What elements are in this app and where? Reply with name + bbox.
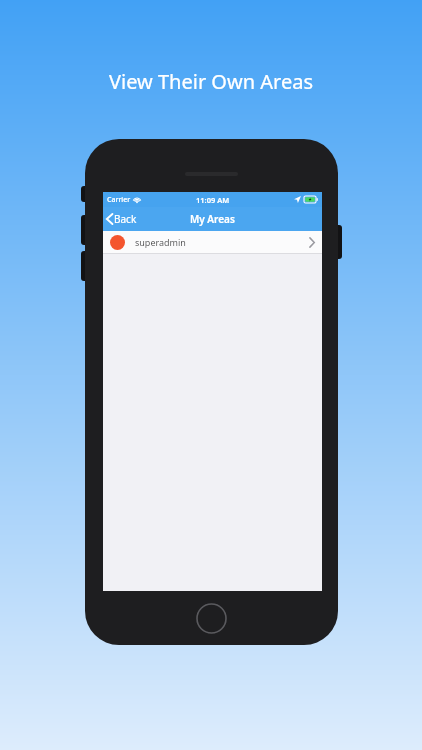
staticText: Back <box>114 212 137 226</box>
staticText: Carrier <box>107 195 131 205</box>
button[interactable]: superadmin <box>103 231 322 253</box>
button[interactable]: Back <box>103 207 143 231</box>
staticText: View Their Own Areas <box>109 68 313 95</box>
button[interactable]: Home <box>196 603 227 634</box>
staticText: superadmin <box>135 236 186 248</box>
staticText: 11:09 AM <box>196 195 230 205</box>
staticText: My Areas <box>190 212 235 226</box>
